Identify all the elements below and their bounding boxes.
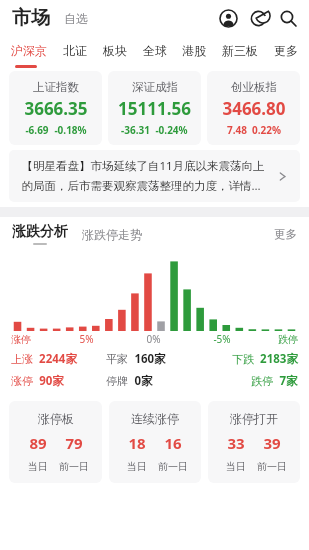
staticText: 涨停板 [38,411,74,426]
button[interactable]: 连续涨停 [109,401,201,483]
staticText: 沪深京 [11,43,47,58]
staticText: 北证 [63,43,87,58]
staticText: 90家 [39,373,64,389]
staticText: 平家 [106,352,128,366]
staticText: 0家 [134,373,153,389]
staticText: 下跌 [232,352,254,366]
staticText: 涨停 [11,374,33,388]
staticText: 涨停 [11,333,31,346]
staticText: 上涨 [11,352,33,366]
staticText: -5% [213,332,231,346]
staticText: 连续涨停 [131,411,179,426]
staticText: 15111.56 [118,97,191,120]
button[interactable]: Night mode [243,3,273,33]
button[interactable]: 创业板指 [207,71,300,145]
staticText: 涨跌停走势 [82,227,142,242]
button[interactable]: 新三板 [219,40,261,61]
staticText: 跌停 [251,374,273,388]
staticText: 涨跌分析 [12,223,68,241]
button[interactable]: 北证 [60,40,90,61]
staticText: 深证成指 [132,80,178,94]
staticText: 16 [164,433,182,453]
button[interactable]: 涨停打开 [208,401,300,483]
staticText: 5% [79,332,94,346]
staticText: 7家 [279,373,298,389]
staticText: 板块 [103,43,127,58]
staticText: 当日 [226,460,246,473]
staticText: 跌停 [278,333,298,346]
staticText: 市场 [12,6,50,30]
button[interactable]: 【明星看盘】市场延续了自11月底以来震荡向上 [9,150,300,202]
button[interactable]: 深证成指 [108,71,201,145]
staticText: -36.31 [121,123,150,137]
staticText: 160家 [134,351,166,367]
staticText: 涨停打开 [230,411,278,426]
staticText: 的局面，后市需要观察震荡整理的力度，详情… [21,178,261,194]
staticText: 港股 [182,43,206,58]
staticText: 更多 [274,43,298,58]
staticText: 自选 [64,11,88,26]
staticText: 新三板 [222,43,258,58]
staticText: 2244家 [39,351,77,367]
staticText: 当日 [127,460,147,473]
staticText: 18 [128,433,146,453]
staticText: 2183家 [260,351,298,367]
staticText: 79 [65,433,83,453]
button[interactable]: 涨跌分析 [12,223,68,245]
button[interactable]: 沪深京 [8,40,50,61]
staticText: 0% [146,332,161,346]
staticText: 创业板指 [231,80,277,94]
button[interactable]: 涨停板 [9,401,102,483]
staticText: 停牌 [106,374,128,388]
staticText: 上证指数 [33,80,79,94]
button[interactable]: Search [273,3,303,33]
staticText: 前一日 [257,460,287,473]
staticText: -6.69 [25,123,49,137]
staticText: 7.48 [227,123,247,137]
staticText: -0.24% [155,123,188,137]
staticText: 3466.80 [222,97,286,120]
staticText: 全球 [143,43,167,58]
button[interactable]: 港股 [179,40,209,61]
button[interactable]: 涨跌停走势 [82,223,142,246]
staticText: 前一日 [158,460,188,473]
staticText: 3666.35 [24,97,88,120]
button[interactable]: 更多 [271,40,301,61]
button[interactable]: 全球 [140,40,170,61]
button[interactable]: 自选 [62,7,90,30]
button[interactable]: 上证指数 [9,71,102,145]
staticText: -0.18% [54,123,87,137]
staticText: 【明星看盘】市场延续了自11月底以来震荡向上 [21,158,265,174]
staticText: 更多 [274,227,297,241]
staticText: 33 [227,433,245,453]
staticText: 39 [263,433,281,453]
staticText: 89 [29,433,47,453]
button[interactable]: Profile [213,3,243,33]
staticText: 0.22% [252,123,281,137]
button[interactable]: 板块 [100,40,130,61]
staticText: 前一日 [59,460,89,473]
button[interactable]: 更多 [274,223,297,245]
staticText: 当日 [28,460,48,473]
